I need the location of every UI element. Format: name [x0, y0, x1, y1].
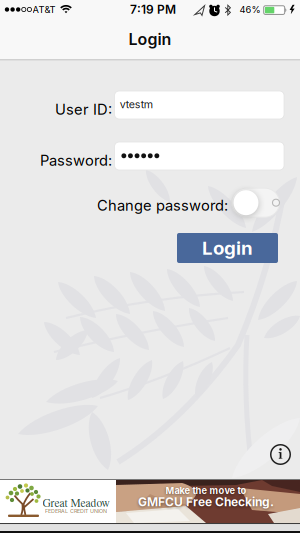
- staticText: AT&T: [32, 4, 55, 15]
- staticText: FEDERAL CREDIT UNION: [45, 508, 107, 514]
- staticText: 7:19 PM: [130, 2, 176, 17]
- staticText: vtestm: [120, 98, 153, 111]
- staticText: User ID:: [55, 101, 112, 118]
- button[interactable]: Login: [177, 233, 278, 263]
- staticText: GMFCU Free Checking.: [138, 495, 274, 509]
- button[interactable]: User ID: [115, 91, 284, 119]
- staticText: Change password:: [97, 197, 228, 214]
- staticText: 46%: [239, 4, 260, 15]
- staticText: Make the move to: [165, 485, 246, 496]
- staticText: Great Meadow: [42, 495, 109, 510]
- button[interactable]: GMFCU Free Checking ad: [0, 480, 300, 523]
- button[interactable]: Change password: [231, 188, 279, 217]
- button[interactable]: Password: [115, 142, 284, 170]
- staticText: Password:: [40, 152, 112, 169]
- staticText: Login: [202, 237, 253, 259]
- staticText: Login: [128, 30, 171, 49]
- button[interactable]: Info: [269, 443, 291, 465]
